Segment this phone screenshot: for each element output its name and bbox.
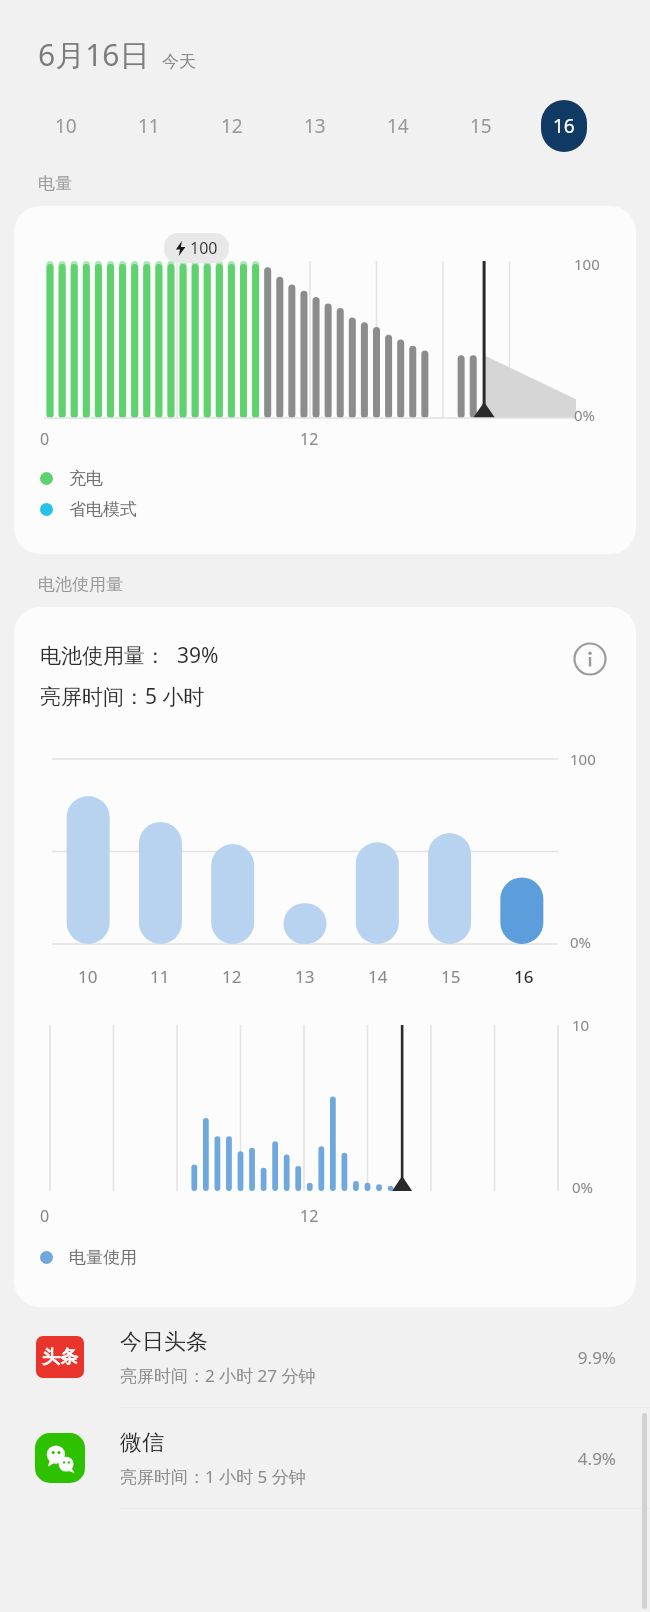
button[interactable]: 11 xyxy=(113,97,185,155)
button[interactable]: 信息 xyxy=(566,635,614,683)
staticText: 电量使用 xyxy=(69,1247,137,1268)
staticText: 10 xyxy=(78,965,98,988)
staticText: 今天 xyxy=(162,51,196,72)
staticText: 16 xyxy=(553,113,575,139)
staticText: 充电 xyxy=(69,468,103,489)
staticText: 9.9% xyxy=(577,1346,616,1369)
button[interactable]: 13 xyxy=(279,97,351,155)
button[interactable]: 12 xyxy=(196,97,268,155)
staticText: 亮屏时间：2 小时 27 分钟 xyxy=(120,1364,316,1387)
staticText: 6月16日 xyxy=(38,34,150,75)
staticText: 0% xyxy=(572,1177,594,1197)
staticText: 11 xyxy=(150,965,170,988)
staticText: 16 xyxy=(514,965,534,988)
staticText: 100 xyxy=(190,237,218,259)
staticText: 10 xyxy=(55,113,77,139)
button[interactable]: 微信 xyxy=(0,1408,650,1508)
staticText: 14 xyxy=(387,113,409,139)
staticText: 100 xyxy=(574,254,600,274)
staticText: 0 xyxy=(40,428,50,450)
button[interactable]: 15 xyxy=(445,97,517,155)
staticText: 10 xyxy=(572,1015,590,1035)
staticText: 省电模式 xyxy=(69,499,137,520)
staticText: 15 xyxy=(470,113,492,139)
staticText: 15 xyxy=(441,965,461,988)
staticText: 100 xyxy=(570,749,596,769)
staticText: 12 xyxy=(300,1205,319,1227)
staticText: 12 xyxy=(300,428,319,450)
button[interactable]: 14 xyxy=(362,97,434,155)
staticText: 微信 xyxy=(120,1429,164,1457)
staticText: 电池使用量： 39% xyxy=(40,641,219,670)
staticText: 0 xyxy=(40,1205,50,1227)
staticText: 12 xyxy=(222,965,242,988)
button[interactable]: 100 xyxy=(14,206,636,554)
staticText: 今日头条 xyxy=(120,1328,208,1356)
button[interactable]: 电池使用量： 39% xyxy=(14,607,636,1307)
staticText: 头条 xyxy=(42,1346,78,1369)
staticText: 14 xyxy=(368,965,388,988)
staticText: 0% xyxy=(570,932,592,952)
staticText: 13 xyxy=(295,965,315,988)
staticText: 11 xyxy=(138,113,160,139)
staticText: 0% xyxy=(574,405,596,425)
staticText: 电量 xyxy=(38,173,72,194)
staticText: 亮屏时间：5 小时 xyxy=(40,682,205,711)
staticText: 12 xyxy=(221,113,243,139)
staticText: 亮屏时间：1 小时 5 分钟 xyxy=(120,1465,306,1488)
staticText: 4.9% xyxy=(577,1447,616,1470)
button[interactable]: 头条 xyxy=(0,1307,650,1407)
staticText: 电池使用量 xyxy=(38,574,123,595)
button[interactable]: 16 xyxy=(528,97,600,155)
staticText: 13 xyxy=(304,113,326,139)
button[interactable]: 10 xyxy=(30,97,102,155)
